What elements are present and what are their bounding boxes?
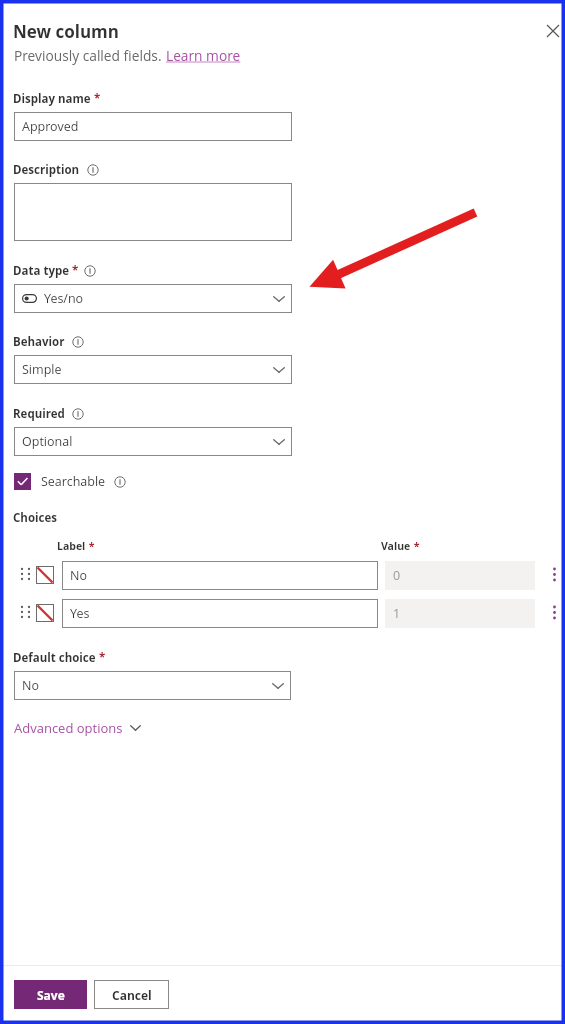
button[interactable]: Reorder choice [18, 567, 32, 581]
staticText: Approved [22, 118, 79, 135]
button[interactable]: Learn more [166, 46, 241, 65]
staticText: 1 [393, 605, 401, 622]
staticText: * [91, 91, 101, 107]
staticText: Required [13, 406, 65, 422]
staticText: No [22, 677, 39, 694]
staticText: Cancel [112, 987, 152, 1003]
staticText: Advanced options [14, 719, 123, 737]
button[interactable]: No [14, 671, 291, 700]
staticText: Description [13, 162, 80, 178]
staticText: Display name [13, 91, 91, 107]
staticText: * [411, 539, 420, 553]
button[interactable]: Cancel [94, 980, 169, 1009]
button[interactable]: Choice image [36, 604, 54, 622]
button[interactable]: More options [546, 566, 562, 582]
staticText: 0 [393, 567, 401, 584]
button[interactable] [14, 183, 292, 241]
button[interactable]: Searchable [14, 473, 126, 490]
staticText: Choices [13, 510, 57, 526]
staticText: Save [37, 987, 65, 1003]
staticText: Yes/no [44, 290, 84, 307]
button[interactable]: 0 [385, 561, 535, 590]
button[interactable]: Yes/no [14, 284, 292, 313]
button[interactable]: Close [537, 15, 565, 47]
button[interactable]: Yes [62, 599, 378, 628]
staticText: Yes [70, 605, 90, 622]
staticText: Value [381, 539, 411, 553]
staticText: Previously called fields. [14, 46, 166, 65]
button[interactable]: No [62, 561, 378, 590]
button[interactable]: Simple [14, 355, 292, 384]
button[interactable]: More options [546, 604, 562, 620]
button[interactable]: Optional [14, 427, 292, 456]
staticText: * [69, 263, 79, 279]
button[interactable]: Advanced options [14, 719, 141, 737]
staticText: New column [13, 20, 119, 43]
staticText: * [86, 539, 95, 553]
staticText: Default choice [13, 650, 96, 666]
staticText: Searchable [41, 473, 106, 490]
staticText: No [70, 567, 87, 584]
staticText: Optional [22, 433, 73, 450]
staticText: Label [57, 539, 86, 553]
staticText: Data type [13, 263, 69, 279]
button[interactable]: Approved [14, 112, 292, 141]
staticText: Simple [22, 361, 62, 378]
button[interactable]: Choice image [36, 566, 54, 584]
staticText: * [96, 650, 106, 666]
button[interactable]: Save [14, 980, 87, 1009]
staticText: Behavior [13, 334, 65, 350]
button[interactable]: 1 [385, 599, 535, 628]
button[interactable]: Reorder choice [18, 605, 32, 619]
